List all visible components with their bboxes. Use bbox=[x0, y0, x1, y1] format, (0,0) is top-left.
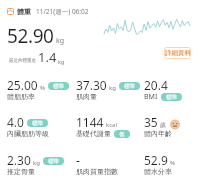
button[interactable]: 詳細資料 bbox=[164, 47, 191, 59]
staticText: 詳細資料 bbox=[165, 49, 191, 57]
staticText: BMI bbox=[144, 92, 158, 102]
staticText: 推定骨量 bbox=[7, 167, 35, 176]
staticText: 肌肉量 bbox=[76, 92, 97, 101]
staticText: 20.4 bbox=[144, 77, 168, 93]
staticText: 標準 bbox=[124, 83, 135, 90]
staticText: 肌肉質量指數 bbox=[76, 167, 118, 176]
staticText: 4.0 bbox=[7, 114, 24, 130]
staticText: 標準 bbox=[32, 120, 43, 127]
staticText: 體水分率 bbox=[144, 167, 172, 176]
staticText: kcal bbox=[106, 121, 117, 129]
staticText: % bbox=[170, 159, 175, 167]
staticText: 標準 bbox=[53, 83, 64, 90]
staticText: 52.90 bbox=[7, 23, 54, 49]
staticText: 體重 bbox=[17, 7, 31, 16]
staticText: kg bbox=[33, 159, 40, 167]
staticText: 體內年齡 bbox=[144, 129, 172, 138]
staticText: 基礎代謝量 bbox=[76, 129, 111, 138]
staticText: 低 bbox=[119, 131, 125, 138]
staticText: - bbox=[76, 152, 80, 168]
staticText: kg bbox=[56, 36, 65, 46]
staticText: 52.9 bbox=[144, 152, 168, 168]
staticText: 2.30 bbox=[7, 152, 31, 168]
staticText: kg bbox=[109, 84, 116, 92]
staticText: 歲 bbox=[160, 121, 166, 129]
staticText: % bbox=[40, 84, 45, 92]
staticText: 最近的體重差 bbox=[9, 58, 36, 64]
staticText: 37.30 bbox=[76, 77, 107, 93]
staticText: 內臟脂肪等級 bbox=[7, 129, 49, 138]
staticText: 25.00 bbox=[7, 77, 38, 93]
staticText: 35 bbox=[144, 114, 158, 130]
staticText: 11/21(週一) 06:02 bbox=[36, 7, 89, 16]
staticText: 標準 bbox=[166, 94, 177, 101]
staticText: 標準 bbox=[48, 158, 59, 165]
staticText: 1.4 bbox=[38, 48, 57, 66]
staticText: 體脂肪率 bbox=[7, 92, 35, 101]
staticText: kg bbox=[58, 58, 65, 65]
staticText: 1144 bbox=[76, 114, 104, 130]
